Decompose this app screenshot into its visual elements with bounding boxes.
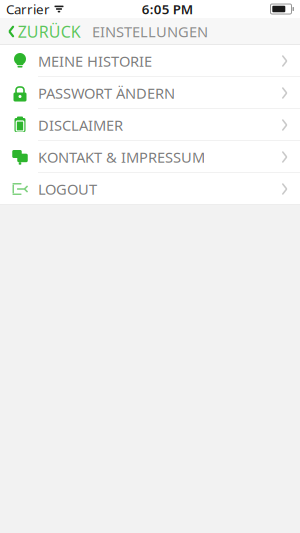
staticText: EINSTELLUNGEN — [92, 22, 208, 41]
button[interactable]: KONTAKT & IMPRESSUM — [0, 141, 300, 173]
staticText: DISCLAIMER — [38, 115, 123, 135]
button[interactable]: DISCLAIMER — [0, 109, 300, 141]
staticText: MEINE HISTORIE — [38, 51, 152, 71]
staticText: KONTAKT & IMPRESSUM — [38, 147, 205, 167]
staticText: Carrier — [6, 0, 50, 18]
button[interactable]: PASSWORT ÄNDERN — [0, 77, 300, 109]
button[interactable]: MEINE HISTORIE — [0, 45, 300, 77]
button[interactable]: LOGOUT — [0, 173, 300, 205]
staticText: LOGOUT — [38, 179, 97, 199]
staticText: PASSWORT ÄNDERN — [38, 83, 175, 103]
staticText: ZURÜCK — [18, 21, 81, 42]
button[interactable]: ZURÜCK — [0, 15, 91, 48]
staticText: 6:05 PM — [142, 0, 193, 18]
